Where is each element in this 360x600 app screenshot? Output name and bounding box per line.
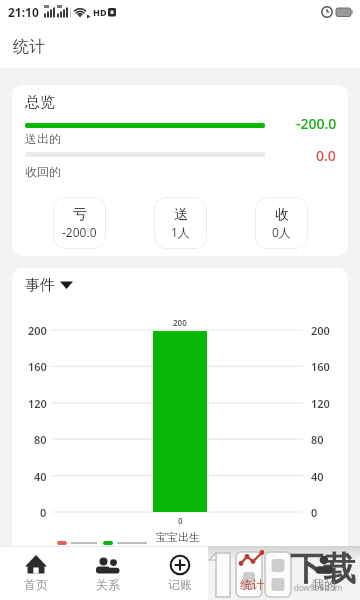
button[interactable] <box>72 546 144 600</box>
staticText: 收 <box>275 206 289 224</box>
staticText: 0人 <box>272 224 291 240</box>
staticText: 收回的 <box>25 164 61 179</box>
staticText: 120 <box>28 396 47 411</box>
button[interactable] <box>288 546 360 600</box>
staticText: 首页 <box>24 577 48 592</box>
staticText: 120 <box>311 396 330 411</box>
staticText: 0 <box>178 515 183 526</box>
button[interactable] <box>0 546 72 600</box>
button[interactable] <box>144 546 216 600</box>
staticText: HD <box>93 6 107 18</box>
staticText: 统计 <box>240 577 264 592</box>
staticText: 200 <box>28 323 47 338</box>
staticText: 总览 <box>25 93 55 112</box>
staticText: 40 <box>311 469 324 484</box>
staticText: 160 <box>28 359 47 374</box>
staticText: 宝宝出生 <box>156 530 200 544</box>
staticText: 200 <box>311 323 330 338</box>
staticText: 40 <box>34 469 47 484</box>
button[interactable]: 收 <box>255 197 308 249</box>
staticText: 关系 <box>96 577 120 592</box>
staticText: 我的 <box>312 577 336 592</box>
staticText: 80 <box>311 432 324 447</box>
staticText: dow9b8.com <box>294 582 343 593</box>
button[interactable] <box>22 272 92 296</box>
staticText: -200.0 <box>296 114 337 132</box>
staticText: 送出的 <box>25 131 61 146</box>
staticText: 200 <box>173 317 187 328</box>
staticText: 0 <box>40 505 47 520</box>
staticText: 21:10 <box>8 4 39 20</box>
staticText: 80 <box>34 432 47 447</box>
staticText: 160 <box>311 359 330 374</box>
staticText: 下载 <box>290 548 356 590</box>
button[interactable]: 亏 <box>53 197 106 249</box>
staticText: 亏 <box>73 206 87 224</box>
staticText: 0 <box>311 505 318 520</box>
staticText: -200.0 <box>62 224 97 240</box>
staticText: 送 <box>174 206 188 224</box>
button[interactable]: 送 <box>154 197 207 249</box>
staticText: 事件 <box>25 276 55 295</box>
staticText: 1人 <box>171 224 190 240</box>
button[interactable] <box>216 546 288 600</box>
staticText: 统计 <box>13 37 45 57</box>
staticText: 记账 <box>168 577 192 592</box>
staticText: 0.0 <box>316 146 336 164</box>
